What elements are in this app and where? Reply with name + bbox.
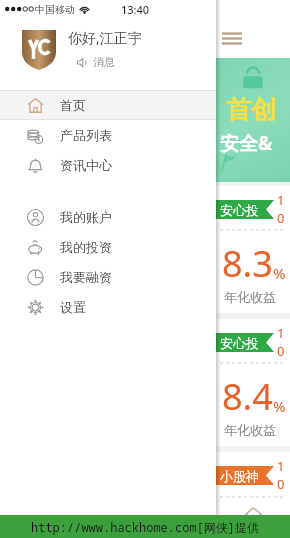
- staticText: 首创: [226, 94, 276, 125]
- button[interactable]: 设置: [0, 292, 216, 322]
- staticText: 8.4: [222, 372, 273, 421]
- button[interactable]: 消息: [68, 52, 124, 72]
- button[interactable]: 我要融资: [0, 262, 216, 292]
- staticText: %: [273, 263, 286, 283]
- staticText: 首页: [60, 97, 86, 113]
- staticText: 年化收益: [224, 289, 276, 305]
- button[interactable]: 首页: [0, 90, 216, 120]
- staticText: http://www.hackhome.com[网侠]提供: [31, 519, 260, 535]
- button[interactable]: 我的投资: [0, 232, 216, 262]
- button[interactable]: 安心投: [216, 319, 290, 446]
- staticText: 安全&: [220, 130, 273, 156]
- button[interactable]: 安心投: [216, 186, 290, 313]
- staticText: 年化收益: [224, 422, 276, 438]
- staticText: 资讯中心: [60, 157, 112, 173]
- staticText: 消息: [93, 55, 115, 69]
- staticText: 小股神: [220, 468, 259, 484]
- staticText: 10: [277, 324, 290, 360]
- staticText: 我要融资: [60, 269, 112, 285]
- staticText: 首页: [245, 527, 263, 538]
- staticText: 产品列表: [60, 127, 112, 143]
- staticText: 我的账户: [60, 209, 112, 225]
- staticText: 安心投: [220, 335, 259, 351]
- button[interactable]: Menu: [219, 25, 245, 51]
- staticText: 中国移动: [35, 3, 75, 16]
- button[interactable]: 首页: [244, 506, 263, 538]
- staticText: 设置: [60, 299, 86, 315]
- staticText: 10: [277, 457, 290, 493]
- button[interactable]: 资讯中心: [0, 150, 216, 180]
- staticText: 10: [277, 191, 290, 227]
- button[interactable]: 我的账户: [0, 202, 216, 232]
- staticText: 你好,江正宇: [68, 28, 142, 47]
- button[interactable]: 产品列表: [0, 120, 216, 150]
- staticText: %: [273, 396, 286, 416]
- staticText: 13:40: [121, 2, 150, 17]
- staticText: 8.3: [222, 239, 273, 288]
- button[interactable]: 小股神: [216, 452, 290, 506]
- staticText: 安心投: [220, 202, 259, 218]
- staticText: 我的投资: [60, 239, 112, 255]
